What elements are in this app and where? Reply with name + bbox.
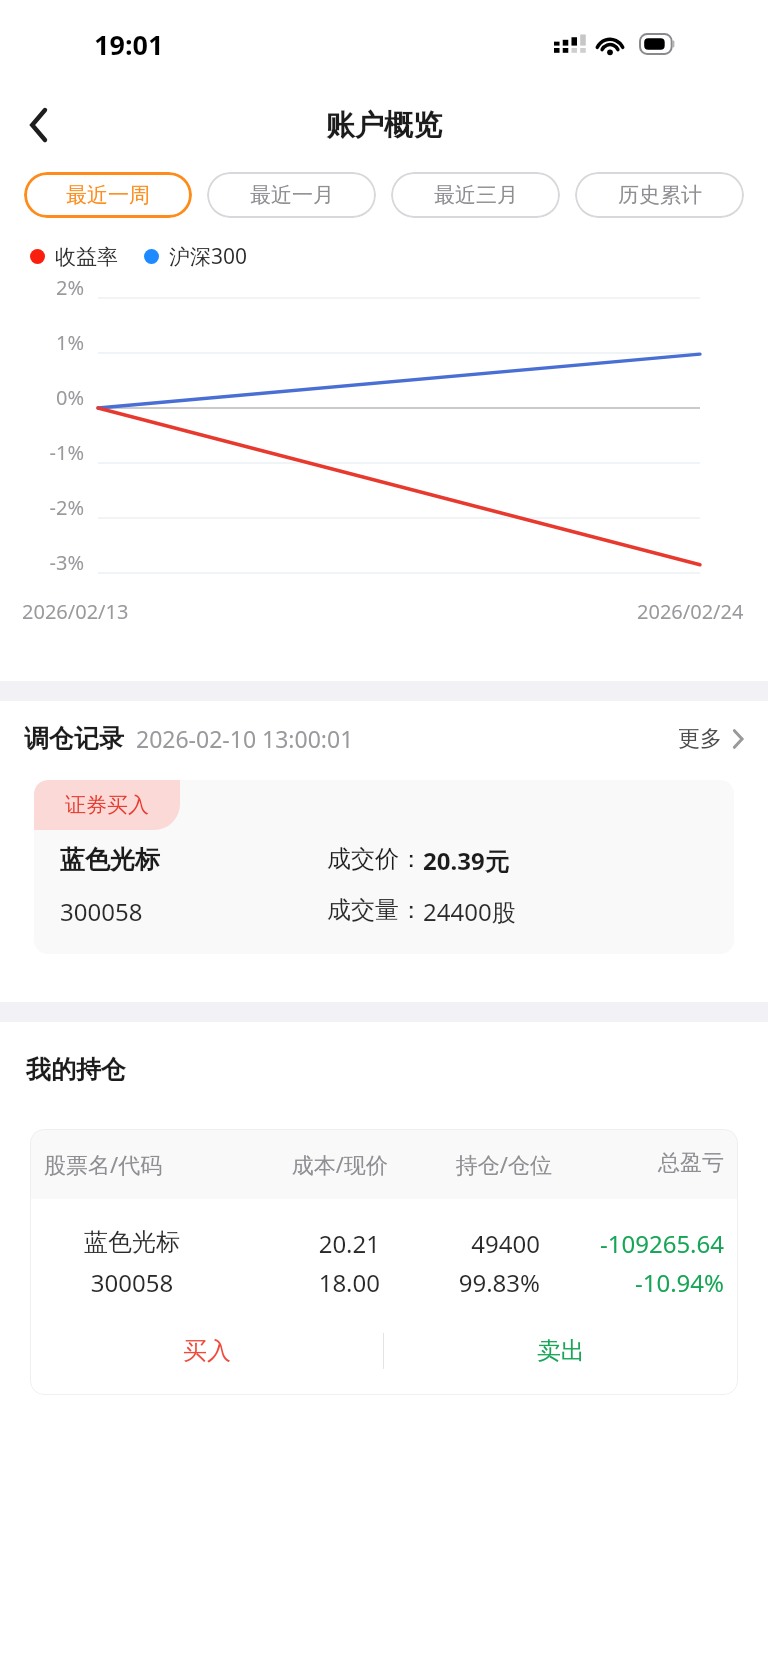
staticText: 20.39元 bbox=[423, 844, 509, 877]
button[interactable]: 历史累计 bbox=[575, 172, 744, 218]
staticText: 股票名/代码 bbox=[44, 1149, 224, 1179]
staticText: 沪深300 bbox=[169, 242, 248, 271]
staticText: 18.00 bbox=[220, 1266, 380, 1299]
button[interactable]: 最近三月 bbox=[391, 172, 560, 218]
staticText: -2% bbox=[0, 494, 84, 521]
staticText: 持仓/仓位 bbox=[388, 1149, 552, 1179]
staticText: 蓝色光标 bbox=[44, 1227, 220, 1257]
staticText: -10.94% bbox=[540, 1266, 724, 1299]
staticText: -109265.64 bbox=[540, 1227, 724, 1260]
staticText: 最近三月 bbox=[434, 182, 518, 208]
staticText: 收益率 bbox=[55, 244, 118, 270]
staticText: 20.21 bbox=[220, 1227, 380, 1260]
button[interactable]: 卖出 bbox=[384, 1321, 738, 1381]
button[interactable]: 最近一月 bbox=[207, 172, 376, 218]
button[interactable]: 证券买入 bbox=[34, 780, 734, 954]
staticText: 买入 bbox=[183, 1336, 231, 1366]
staticText: 成本/现价 bbox=[224, 1149, 388, 1179]
staticText: 证券买入 bbox=[65, 792, 149, 818]
staticText: 调仓记录 bbox=[24, 723, 124, 754]
staticText: 我的持仓 bbox=[26, 1054, 126, 1085]
staticText: 2% bbox=[0, 274, 84, 301]
staticText: 2026/02/13 bbox=[22, 598, 129, 625]
staticText: 0% bbox=[0, 384, 84, 411]
staticText: 最近一周 bbox=[66, 182, 150, 208]
staticText: -1% bbox=[0, 439, 84, 466]
button[interactable]: 买入 bbox=[30, 1321, 383, 1381]
staticText: 历史累计 bbox=[618, 182, 702, 208]
staticText: 账户概览 bbox=[326, 107, 442, 144]
staticText: 2026-02-10 13:00:01 bbox=[136, 723, 354, 754]
staticText: 24400股 bbox=[423, 895, 516, 928]
staticText: 2026/02/24 bbox=[637, 598, 744, 625]
staticText: 更多 bbox=[678, 725, 722, 753]
staticText: 卖出 bbox=[537, 1336, 585, 1366]
staticText: 总盈亏 bbox=[552, 1149, 724, 1177]
button[interactable]: 调仓记录 bbox=[24, 723, 744, 754]
staticText: 蓝色光标 bbox=[60, 844, 327, 875]
staticText: 99.83% bbox=[380, 1266, 540, 1299]
staticText: 300058 bbox=[60, 895, 327, 928]
button[interactable]: 最近一周 bbox=[24, 172, 192, 218]
staticText: 19:01 bbox=[94, 26, 164, 63]
button[interactable]: Back bbox=[10, 96, 68, 154]
staticText: 成交量： bbox=[327, 895, 423, 925]
staticText: 1% bbox=[0, 329, 84, 356]
staticText: 300058 bbox=[44, 1266, 220, 1299]
staticText: -3% bbox=[0, 549, 84, 576]
staticText: 成交价： bbox=[327, 844, 423, 874]
staticText: 最近一月 bbox=[250, 182, 334, 208]
staticText: 49400 bbox=[380, 1227, 540, 1260]
